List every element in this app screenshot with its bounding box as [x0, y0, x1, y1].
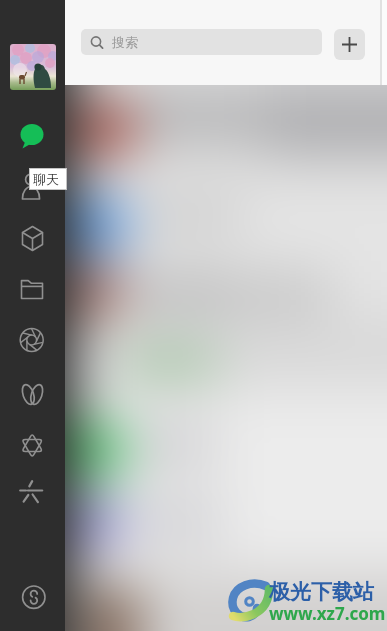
button[interactable]	[14, 376, 51, 413]
button[interactable]	[14, 473, 51, 510]
staticText: www.xz7.com	[269, 602, 386, 625]
button[interactable]	[14, 271, 51, 308]
staticText: 极光下载站	[269, 579, 374, 605]
button[interactable]	[10, 44, 56, 90]
staticText: 聊天	[33, 171, 59, 187]
button[interactable]	[14, 168, 51, 205]
button[interactable]	[14, 428, 51, 465]
button[interactable]	[14, 220, 51, 257]
button[interactable]	[14, 117, 51, 154]
button[interactable]	[334, 29, 365, 60]
button[interactable]: 搜索	[81, 29, 322, 55]
button[interactable]: 聊天	[29, 168, 67, 190]
button[interactable]	[14, 579, 51, 616]
staticText: 搜索	[112, 34, 138, 50]
button[interactable]	[14, 322, 51, 359]
